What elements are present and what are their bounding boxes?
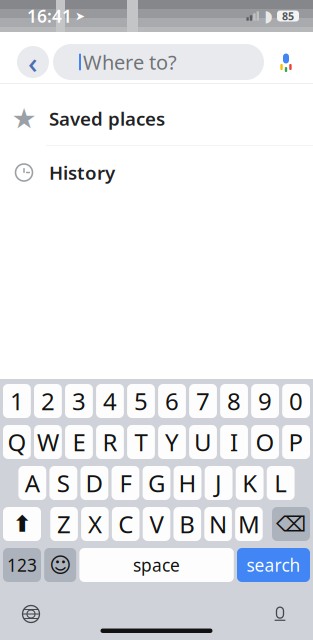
button[interactable]: History — [0, 146, 313, 199]
button[interactable]: J — [205, 466, 232, 500]
staticText: 6 — [165, 385, 179, 417]
staticText: 9 — [258, 385, 272, 417]
staticText: P — [289, 426, 304, 458]
staticText: L — [274, 467, 287, 499]
button[interactable]: 8 — [220, 384, 248, 418]
staticText: Z — [57, 508, 71, 540]
button[interactable]: search — [237, 548, 310, 582]
button[interactable]: Shift — [3, 507, 41, 541]
button[interactable]: 2 — [34, 384, 62, 418]
button[interactable]: Voice search — [264, 40, 308, 84]
button[interactable]: B — [173, 507, 201, 541]
button[interactable]: Delete — [272, 507, 310, 541]
staticText: ‹ — [28, 42, 38, 81]
staticText: T — [134, 426, 147, 458]
staticText: 1 — [10, 385, 24, 417]
button[interactable]: C — [112, 507, 139, 541]
staticText: V — [149, 508, 163, 540]
staticText: A — [25, 467, 40, 499]
button[interactable]: 7 — [189, 384, 217, 418]
staticText: Saved places — [49, 106, 165, 131]
button[interactable]: 4 — [96, 384, 124, 418]
staticText: H — [178, 467, 196, 499]
button[interactable]: W — [34, 425, 62, 459]
button[interactable]: H — [174, 466, 201, 500]
staticText: ◗ — [264, 7, 272, 25]
staticText: K — [242, 467, 257, 499]
button[interactable]: Y — [158, 425, 186, 459]
button[interactable]: O — [251, 425, 279, 459]
staticText: 0 — [289, 385, 303, 417]
staticText: X — [88, 508, 102, 540]
button[interactable]: 6 — [158, 384, 186, 418]
button[interactable]: M — [235, 507, 263, 541]
button[interactable]: 5 — [127, 384, 155, 418]
button[interactable]: R — [96, 425, 124, 459]
staticText: 16:41 — [27, 4, 72, 27]
button[interactable]: 9 — [251, 384, 279, 418]
button[interactable]: A — [18, 466, 46, 500]
staticText: ⌫ — [276, 512, 306, 536]
staticText: ☺ — [49, 553, 71, 577]
staticText: J — [215, 467, 222, 499]
button[interactable]: Z — [50, 507, 78, 541]
staticText: Q — [7, 426, 26, 458]
staticText: F — [119, 467, 131, 499]
button[interactable]: P — [282, 425, 310, 459]
staticText: Y — [165, 426, 179, 458]
staticText: G — [148, 467, 165, 499]
staticText: 8 — [227, 385, 241, 417]
button[interactable]: Change keyboard — [14, 597, 48, 631]
staticText: I — [230, 426, 238, 458]
staticText: 7 — [196, 385, 210, 417]
button[interactable]: X — [81, 507, 109, 541]
staticText: D — [85, 467, 103, 499]
button[interactable]: U — [189, 425, 217, 459]
button[interactable]: Emoji — [44, 548, 76, 582]
button[interactable]: I — [220, 425, 248, 459]
button[interactable]: E — [65, 425, 93, 459]
button[interactable]: 0 — [282, 384, 310, 418]
staticText: O — [256, 426, 275, 458]
staticText: W — [37, 426, 59, 458]
button[interactable]: K — [236, 466, 263, 500]
staticText: History — [49, 160, 115, 185]
button[interactable]: V — [143, 507, 170, 541]
staticText: B — [179, 508, 195, 540]
button[interactable]: 1 — [3, 384, 31, 418]
staticText: space — [133, 553, 180, 576]
staticText: R — [102, 426, 117, 458]
button[interactable]: T — [127, 425, 155, 459]
button[interactable]: G — [143, 466, 170, 500]
staticText: ⬆ — [12, 511, 31, 537]
staticText: N — [209, 508, 227, 540]
button[interactable]: Back — [13, 40, 53, 84]
button[interactable]: L — [267, 466, 295, 500]
button[interactable]: S — [49, 466, 77, 500]
staticText: C — [118, 508, 133, 540]
staticText: 5 — [134, 385, 148, 417]
button[interactable]: 123 — [3, 548, 41, 582]
button[interactable]: F — [111, 466, 139, 500]
button[interactable]: N — [204, 507, 232, 541]
staticText: ★ — [11, 103, 36, 134]
button[interactable]: 3 — [65, 384, 93, 418]
staticText: ➤ — [75, 9, 85, 23]
button[interactable]: Dictate — [263, 597, 297, 631]
button[interactable]: ★ — [0, 92, 313, 145]
staticText: S — [57, 467, 70, 499]
button[interactable]: D — [80, 466, 108, 500]
staticText: search — [246, 553, 300, 576]
staticText: M — [238, 508, 260, 540]
staticText: 4 — [103, 385, 117, 417]
button[interactable]: Where to? — [53, 44, 264, 80]
staticText: Where to? — [83, 49, 177, 75]
staticText: U — [194, 426, 212, 458]
staticText: 3 — [72, 385, 86, 417]
staticText: 123 — [7, 553, 37, 576]
button[interactable]: space — [79, 548, 234, 582]
staticText: 85 — [282, 9, 294, 23]
staticText: E — [72, 426, 85, 458]
staticText: 2 — [41, 385, 55, 417]
button[interactable]: Q — [3, 425, 31, 459]
